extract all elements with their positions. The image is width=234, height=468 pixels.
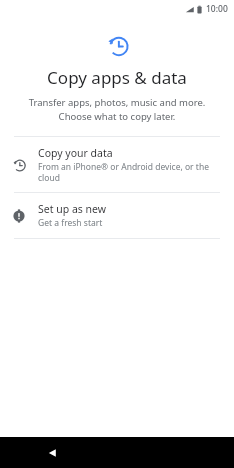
staticText: 10:00 [206, 3, 228, 15]
staticText: Set up as new [38, 202, 106, 216]
staticText: Get a fresh start [38, 217, 103, 229]
staticText: Copy apps & data [12, 66, 222, 89]
staticText: From an iPhone® or Android device, or th… [38, 161, 220, 183]
staticText: Transfer apps, photos, music and more. C… [15, 96, 219, 122]
button[interactable]: Copy your data [0, 137, 234, 192]
button[interactable]: Set up as new [0, 193, 234, 238]
button[interactable]: Back [29, 437, 75, 468]
staticText: Copy your data [38, 146, 113, 160]
